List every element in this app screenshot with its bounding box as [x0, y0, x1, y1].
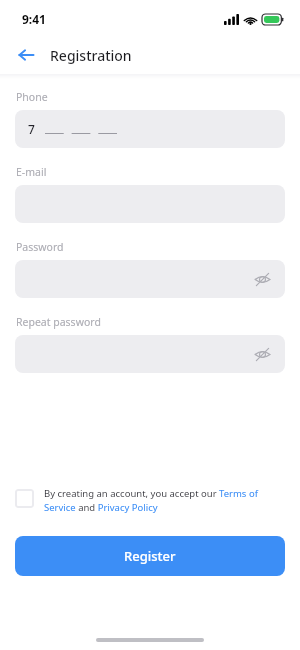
button[interactable]: Show repeated password	[15, 335, 285, 373]
other: Accept terms checkbox	[15, 489, 34, 508]
staticText: 9:41	[22, 11, 46, 27]
button[interactable]: Show password	[15, 260, 285, 298]
staticText: Password	[16, 240, 64, 254]
staticText: Registration	[50, 46, 132, 65]
button[interactable]: 7	[15, 110, 285, 148]
staticText: Register	[124, 547, 176, 565]
staticText: E-mail	[16, 165, 47, 179]
button[interactable]: Show repeated password	[249, 341, 275, 367]
staticText: Phone	[16, 90, 48, 104]
button[interactable]: Show password	[249, 266, 275, 292]
staticText: Repeat password	[16, 315, 101, 329]
staticText: 7	[28, 121, 35, 137]
button[interactable]: Accept terms checkbox	[15, 487, 285, 514]
staticText: By creating an account, you accept our T…	[44, 487, 285, 514]
button[interactable]: Register	[15, 536, 285, 576]
button[interactable]: Back	[10, 39, 42, 71]
